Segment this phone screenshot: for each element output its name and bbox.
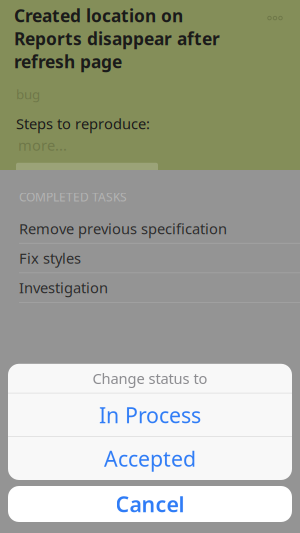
staticText: Investigation [19,278,108,297]
staticText: Steps to reproduce: [16,114,150,133]
button[interactable]: In Process [8,393,292,436]
staticText: TRACKER.REVIEW 02:05 / - [21,167,153,181]
staticText: COMPLETED TASKS [19,189,127,205]
button[interactable]: Cancel [8,486,292,522]
staticText: In Process [99,401,201,429]
staticText: more... [18,135,67,155]
staticText: Remove previous specification [19,219,227,238]
staticText: Change status to [92,369,207,388]
button[interactable]: Remove previous specification [0,214,300,243]
staticText: Cancel [115,490,184,518]
staticText: Fix styles [19,248,81,268]
button[interactable]: More options [258,4,292,32]
staticText: Created location on Reports disappear af… [14,4,220,73]
button[interactable]: Investigation [0,273,300,303]
button[interactable]: Fix styles [0,243,300,273]
staticText: COMPLETED [222,167,286,181]
staticText: bug [16,85,40,103]
button[interactable]: Accepted [8,437,292,480]
staticText: Accepted [104,444,196,473]
